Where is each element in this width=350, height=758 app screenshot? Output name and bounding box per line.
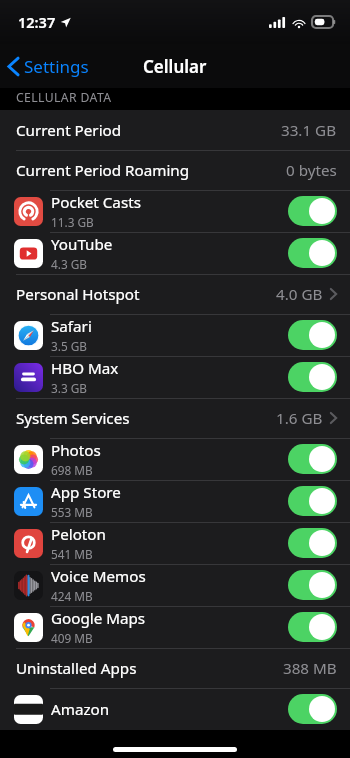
staticText: Peloton [51, 524, 106, 545]
staticText: 409 MB [51, 630, 93, 646]
button[interactable]: Settings [0, 49, 97, 84]
staticText: 12:37 [18, 12, 56, 32]
staticText: Google Maps [51, 608, 146, 629]
button[interactable]: Toggle Voice Memos cellular data [288, 570, 337, 600]
button[interactable]: Voice Memos [0, 564, 350, 606]
staticText: 33.1 GB [281, 120, 337, 141]
staticText: 1.6 GB [276, 408, 323, 429]
button[interactable]: Toggle Photos cellular data [288, 444, 337, 474]
button[interactable]: Personal Hotspot [0, 274, 350, 314]
button[interactable]: App Store [0, 480, 350, 522]
button[interactable]: Toggle Safari cellular data [288, 320, 337, 350]
button[interactable]: Google Maps [0, 606, 350, 648]
staticText: 4.0 GB [276, 284, 323, 305]
staticText: Uninstalled Apps [16, 658, 137, 679]
staticText: 388 MB [283, 658, 337, 679]
button[interactable]: Toggle Peloton cellular data [288, 528, 337, 558]
button[interactable]: Pocket Casts [0, 190, 350, 232]
staticText: Amazon [51, 699, 110, 720]
button[interactable]: Toggle YouTube cellular data [288, 238, 337, 268]
button[interactable]: Peloton [0, 522, 350, 564]
staticText: Settings [24, 55, 89, 78]
staticText: 553 MB [51, 504, 93, 520]
button[interactable]: YouTube [0, 232, 350, 274]
staticText: Current Period Roaming [16, 160, 190, 181]
button[interactable]: Amazon [0, 688, 350, 730]
staticText: 3.3 GB [51, 380, 87, 396]
staticText: Pocket Casts [51, 192, 141, 213]
staticText: Voice Memos [51, 566, 146, 587]
staticText: 698 MB [51, 462, 93, 478]
staticText: System Services [16, 408, 130, 429]
button[interactable]: Current Period Roaming [0, 150, 350, 190]
staticText: HBO Max [51, 358, 119, 379]
button[interactable]: Toggle HBO Max cellular data [288, 362, 337, 392]
staticText: Cellular [143, 55, 207, 78]
staticText: Current Period [16, 120, 122, 141]
staticText: Photos [51, 440, 101, 461]
staticText: 424 MB [51, 588, 93, 604]
button[interactable]: Toggle Google Maps cellular data [288, 612, 337, 642]
staticText: 4.3 GB [51, 256, 87, 272]
staticText: Safari [51, 316, 92, 337]
button[interactable]: Toggle Amazon cellular data [288, 694, 337, 724]
staticText: YouTube [51, 234, 113, 255]
staticText: 3.5 GB [51, 338, 87, 354]
button[interactable]: Safari [0, 314, 350, 356]
staticText: 0 bytes [286, 160, 337, 181]
button[interactable]: Toggle App Store cellular data [288, 486, 337, 516]
button[interactable]: Toggle Pocket Casts cellular data [288, 196, 337, 226]
staticText: App Store [51, 482, 121, 503]
button[interactable]: Current Period [0, 110, 350, 150]
staticText: CELLULAR DATA [16, 89, 112, 106]
button[interactable]: Photos [0, 438, 350, 480]
staticText: Personal Hotspot [16, 284, 140, 305]
button[interactable]: Uninstalled Apps [0, 648, 350, 688]
staticText: 11.3 GB [51, 214, 94, 230]
button[interactable]: HBO Max [0, 356, 350, 398]
button[interactable]: System Services [0, 398, 350, 438]
staticText: 541 MB [51, 546, 93, 562]
